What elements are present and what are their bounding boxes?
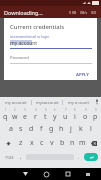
staticText: e <box>23 112 27 122</box>
button[interactable]: l <box>86 122 96 136</box>
button[interactable]: my a count <box>63 97 93 107</box>
button[interactable]: h <box>56 122 66 136</box>
staticText: n <box>70 138 75 148</box>
staticText: z <box>19 138 23 148</box>
staticText: y <box>53 112 57 122</box>
button[interactable]: m <box>77 136 87 150</box>
staticText: g <box>49 124 54 134</box>
button[interactable]: a <box>5 122 16 136</box>
staticText: q <box>3 112 8 122</box>
button[interactable]: 7 <box>60 107 70 122</box>
button[interactable]: my account <box>0 97 31 107</box>
button[interactable]: k <box>76 122 86 136</box>
staticText: my account <box>5 100 27 105</box>
staticText: 0/0 <box>91 10 97 15</box>
staticText: k <box>79 124 83 134</box>
staticText: h <box>59 124 64 134</box>
staticText: username/email or login <box>10 34 50 39</box>
staticText: . <box>78 154 80 161</box>
staticText: Downloading... <box>4 9 43 16</box>
button[interactable]: d <box>26 122 36 136</box>
staticText: d <box>29 124 34 134</box>
staticText: u <box>63 112 68 122</box>
button[interactable]: Shift <box>1 136 15 150</box>
button[interactable]: Home <box>36 168 57 180</box>
staticText: v <box>50 138 54 148</box>
staticText: a <box>9 124 13 134</box>
button[interactable]: 1 <box>1 107 10 122</box>
button[interactable]: ?123 <box>2 152 17 162</box>
staticText: c <box>40 138 44 148</box>
button[interactable]: Enter <box>84 153 98 161</box>
staticText: , <box>20 154 22 161</box>
staticText: 5 <box>45 108 47 112</box>
staticText: l <box>90 124 92 134</box>
staticText: 9 <box>85 108 87 112</box>
button[interactable]: z <box>15 136 26 150</box>
staticText: Password <box>10 55 29 61</box>
button[interactable]: 8 <box>70 107 80 122</box>
button[interactable]: g <box>46 122 56 136</box>
button[interactable]: Recents <box>57 168 78 180</box>
button[interactable]: 0 <box>90 107 100 122</box>
staticText: b <box>60 138 65 148</box>
staticText: m <box>79 138 86 148</box>
staticText: mysaccount <box>36 100 59 105</box>
staticText: 8 <box>74 108 76 112</box>
button[interactable]: b <box>57 136 67 150</box>
staticText: my account <box>10 40 38 47</box>
button[interactable]: j <box>66 122 76 136</box>
staticText: 3 <box>24 108 26 112</box>
button[interactable]: mysaccount <box>32 97 62 107</box>
button[interactable]: 3 <box>20 107 30 122</box>
button[interactable]: s <box>16 122 26 136</box>
staticText: 0 KB <box>69 10 77 15</box>
button[interactable]: Keyboard switcher <box>78 168 97 180</box>
staticText: Current credentials <box>10 23 65 31</box>
button[interactable]: f <box>36 122 46 136</box>
button[interactable]: 5 <box>40 107 50 122</box>
staticText: 2 <box>14 108 16 112</box>
button[interactable]: v <box>47 136 57 150</box>
button[interactable]: c <box>37 136 47 150</box>
staticText: t <box>44 112 47 122</box>
staticText: 7 <box>65 108 67 112</box>
staticText: w <box>12 112 18 122</box>
staticText: x <box>30 138 34 148</box>
button[interactable]: Backspace <box>87 136 100 150</box>
staticText: 4 <box>35 108 37 112</box>
staticText: p <box>93 112 98 122</box>
button[interactable]: 4 <box>30 107 40 122</box>
staticText: APPLY <box>76 72 89 78</box>
button[interactable]: 6 <box>50 107 60 122</box>
staticText: 1 <box>5 108 7 112</box>
staticText: i <box>74 112 76 122</box>
button[interactable]: x <box>26 136 37 150</box>
button[interactable]: , <box>17 152 25 162</box>
button[interactable]: APPLY <box>73 70 92 80</box>
button[interactable]: . <box>75 152 83 162</box>
staticText: my a count <box>68 100 89 105</box>
button[interactable]: Voice input <box>93 97 101 107</box>
button[interactable]: 9 <box>80 107 90 122</box>
staticText: s <box>19 124 23 134</box>
staticText: ?123 <box>5 155 14 160</box>
button[interactable]: 2 <box>10 107 20 122</box>
staticText: r <box>34 112 37 122</box>
staticText: o <box>83 112 88 122</box>
staticText: 6 <box>54 108 56 112</box>
staticText: f <box>40 124 43 134</box>
staticText: 0B/s <box>80 10 88 15</box>
button[interactable]: Back <box>14 168 36 180</box>
button[interactable]: n <box>67 136 77 150</box>
staticText: j <box>70 124 72 134</box>
staticText: 0 <box>95 108 97 112</box>
